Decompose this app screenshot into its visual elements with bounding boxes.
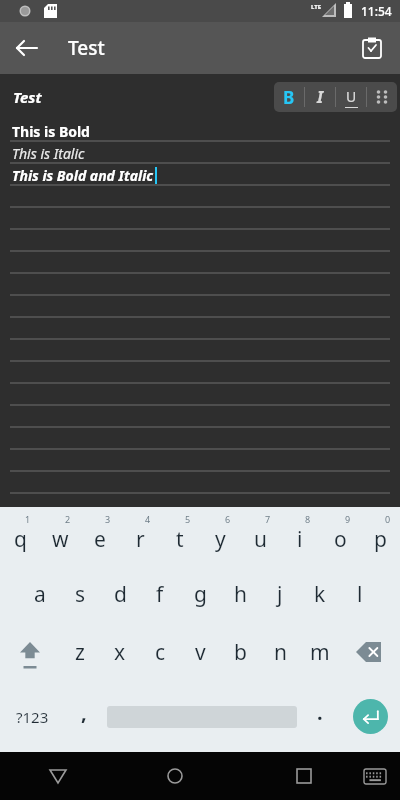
button[interactable]: z (60, 623, 100, 681)
button[interactable]: This is Bold (0, 120, 400, 507)
button[interactable]: , (64, 681, 104, 752)
staticText: ?123 (16, 707, 49, 727)
staticText: 7 (265, 513, 271, 525)
button[interactable]: Checklist (350, 26, 394, 70)
button[interactable]: Recents (233, 752, 350, 800)
staticText: c (155, 638, 166, 667)
staticText: 1 (25, 513, 31, 525)
staticText: I (317, 86, 324, 108)
button[interactable]: Switch keyboard (350, 752, 400, 800)
staticText: 11:54 (361, 3, 392, 19)
button[interactable]: 4 (120, 507, 160, 565)
button[interactable]: ?123 (0, 681, 64, 752)
staticText: r (136, 525, 145, 554)
staticText: This is Bold (12, 122, 90, 141)
staticText: w (52, 525, 69, 554)
staticText: a (34, 580, 46, 609)
button[interactable]: b (220, 623, 260, 681)
button[interactable]: g (180, 565, 220, 623)
staticText: m (310, 638, 330, 667)
button[interactable]: c (140, 623, 180, 681)
staticText: i (297, 525, 303, 554)
staticText: j (277, 580, 283, 609)
staticText: 8 (305, 513, 311, 525)
staticText: d (114, 580, 127, 609)
button[interactable]: x (100, 623, 140, 681)
staticText: p (374, 525, 387, 554)
button[interactable]: More formatting options (367, 82, 397, 112)
button[interactable]: a (20, 565, 60, 623)
staticText: q (14, 525, 27, 554)
staticText: v (195, 638, 206, 667)
staticText: s (75, 580, 86, 609)
button[interactable]: l (340, 565, 380, 623)
button[interactable]: Enter (340, 681, 400, 752)
staticText: u (254, 525, 267, 554)
button[interactable]: 7 (240, 507, 280, 565)
button[interactable]: h (220, 565, 260, 623)
button[interactable]: Home (116, 752, 233, 800)
staticText: 0 (385, 513, 391, 525)
staticText: t (176, 525, 184, 554)
staticText: n (274, 638, 287, 667)
staticText: b (234, 638, 247, 667)
button[interactable]: s (60, 565, 100, 623)
staticText: k (314, 580, 326, 609)
staticText: This is Bold and Italic (12, 166, 154, 185)
staticText: 6 (225, 513, 231, 525)
button[interactable]: f (140, 565, 180, 623)
staticText: 9 (345, 513, 351, 525)
staticText: x (114, 638, 126, 667)
button[interactable]: 5 (160, 507, 200, 565)
button[interactable]: 1 (0, 507, 40, 565)
button[interactable]: I (305, 82, 335, 112)
button[interactable]: 0 (360, 507, 400, 565)
staticText: h (234, 580, 247, 609)
button[interactable]: k (300, 565, 340, 623)
button[interactable]: Backspace (340, 623, 400, 681)
staticText: , (81, 699, 87, 726)
staticText: . (317, 699, 323, 726)
button[interactable]: B (274, 82, 304, 112)
staticText: z (75, 638, 85, 667)
staticText: e (94, 525, 106, 554)
staticText: l (357, 580, 363, 609)
button[interactable]: Back (0, 752, 116, 800)
button[interactable]: 2 (40, 507, 80, 565)
button[interactable]: 9 (320, 507, 360, 565)
button[interactable]: 3 (80, 507, 120, 565)
staticText: 2 (65, 513, 71, 525)
button[interactable]: Back (4, 26, 48, 70)
staticText: y (215, 525, 226, 554)
staticText: 5 (185, 513, 191, 525)
staticText: 4 (145, 513, 151, 525)
button[interactable]: v (180, 623, 220, 681)
button[interactable]: j (260, 565, 300, 623)
staticText: B (283, 86, 295, 109)
staticText: LTE (311, 3, 322, 11)
button[interactable]: 6 (200, 507, 240, 565)
button[interactable]: n (260, 623, 300, 681)
button[interactable]: 8 (280, 507, 320, 565)
staticText: o (334, 525, 347, 554)
button[interactable]: Shift (0, 623, 60, 681)
staticText: g (194, 580, 207, 609)
staticText: Test (13, 87, 42, 107)
staticText: U (346, 87, 357, 106)
staticText: Test (68, 35, 105, 61)
staticText: This is Italic (12, 144, 85, 163)
button[interactable]: U (336, 82, 366, 112)
staticText: f (156, 580, 164, 609)
button[interactable]: . (300, 681, 340, 752)
button[interactable]: d (100, 565, 140, 623)
button[interactable] (104, 681, 300, 752)
staticText: 3 (105, 513, 111, 525)
button[interactable]: m (300, 623, 340, 681)
